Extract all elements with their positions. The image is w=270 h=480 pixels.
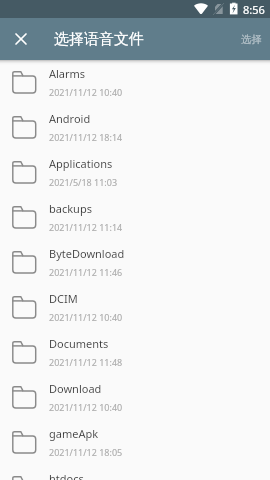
button[interactable]: Documents — [0, 330, 270, 375]
staticText: 2021/11/12 10:40 — [49, 311, 123, 323]
staticText: 2021/5/18 11:03 — [49, 176, 118, 188]
staticText: 2021/11/12 11:46 — [49, 266, 123, 278]
button[interactable]: DCIM — [0, 285, 270, 330]
staticText: 2021/11/12 11:14 — [49, 221, 123, 233]
staticText: 8:56 — [243, 2, 265, 17]
staticText: Documents — [49, 336, 109, 351]
staticText: Android — [49, 111, 91, 126]
staticText: backups — [49, 201, 92, 216]
button[interactable]: htdocs — [0, 465, 270, 480]
staticText: 2021/11/12 11:48 — [49, 356, 123, 368]
button[interactable]: Alarms — [0, 60, 270, 105]
staticText: Applications — [49, 156, 113, 171]
staticText: 2021/11/12 10:40 — [49, 86, 123, 98]
button[interactable]: Close — [0, 18, 42, 60]
staticText: htdocs — [49, 471, 84, 480]
button[interactable]: gameApk — [0, 420, 270, 465]
staticText: Download — [49, 381, 102, 396]
staticText: 选择 — [241, 33, 262, 46]
button[interactable]: Download — [0, 375, 270, 420]
staticText: ByteDownload — [49, 246, 125, 261]
button[interactable]: 选择 — [229, 21, 270, 58]
staticText: Alarms — [49, 66, 86, 81]
staticText: 2021/11/12 18:05 — [49, 446, 123, 458]
staticText: gameApk — [49, 426, 99, 441]
staticText: 2021/11/12 18:14 — [49, 131, 123, 143]
button[interactable]: ByteDownload — [0, 240, 270, 285]
staticText: 2021/11/12 10:40 — [49, 401, 123, 413]
button[interactable]: Applications — [0, 150, 270, 195]
staticText: DCIM — [49, 291, 78, 306]
staticText: 选择语音文件 — [54, 30, 144, 49]
button[interactable]: backups — [0, 195, 270, 240]
button[interactable]: Android — [0, 105, 270, 150]
